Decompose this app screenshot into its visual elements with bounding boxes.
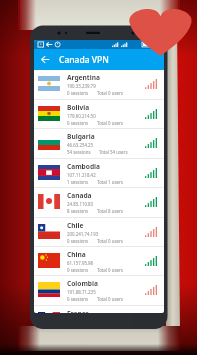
staticText: 0 sessions xyxy=(67,296,89,302)
staticText: 46.63.254.25 xyxy=(67,142,94,148)
staticText: 1 sessions xyxy=(67,179,89,185)
staticText: Total 0 users xyxy=(97,90,123,96)
staticText: Bulgaria xyxy=(67,132,95,141)
staticText: Chile xyxy=(67,221,84,230)
staticText: Total 0 users xyxy=(97,296,123,302)
staticText: 0 sessions xyxy=(67,238,89,244)
button[interactable]: Chile xyxy=(34,218,164,247)
button[interactable]: Bulgaria xyxy=(34,129,164,159)
staticText: 0 sessions xyxy=(67,267,89,273)
button[interactable]: Cambodia xyxy=(34,159,164,188)
button[interactable]: Colombia xyxy=(34,276,164,306)
staticText: Canada xyxy=(67,191,92,200)
staticText: Total 8 users xyxy=(97,208,123,214)
staticText: Cambodia xyxy=(67,162,100,171)
staticText: 8 sessions xyxy=(67,208,89,214)
staticText: 24.85.110.83 xyxy=(67,201,94,207)
staticText: 54 sessions xyxy=(67,149,91,155)
staticText: Total 54 users xyxy=(99,149,128,155)
staticText: 107.11.218.42 xyxy=(67,172,96,178)
staticText: 179.60.214.50 xyxy=(67,113,96,119)
staticText: China xyxy=(67,250,86,259)
staticText: Colombia xyxy=(67,279,98,288)
staticText: 191.88.71.235 xyxy=(67,289,96,295)
staticText: 200.241.74.193 xyxy=(67,231,99,237)
staticText: Total 0 users xyxy=(97,267,123,273)
staticText: Argentina xyxy=(67,73,100,82)
button[interactable]: France xyxy=(34,306,164,313)
staticText: Total 0 users xyxy=(97,238,123,244)
staticText: Total 0 users xyxy=(97,120,123,126)
button[interactable]: Back xyxy=(34,49,56,70)
staticText: 190.33.239.79 xyxy=(67,83,96,89)
staticText: Total 1 users xyxy=(97,179,123,185)
staticText: Canada VPN xyxy=(59,54,109,66)
button[interactable]: Canada xyxy=(34,188,164,218)
button[interactable]: Bolivia xyxy=(34,100,164,129)
staticText: 0 sessions xyxy=(67,90,89,96)
staticText: 0 sessions xyxy=(67,120,89,126)
staticText: France xyxy=(67,309,90,313)
button[interactable]: Argentina xyxy=(34,70,164,100)
staticText: Bolivia xyxy=(67,103,90,112)
button[interactable]: China xyxy=(34,247,164,276)
staticText: 61.157.95.98 xyxy=(67,260,94,266)
